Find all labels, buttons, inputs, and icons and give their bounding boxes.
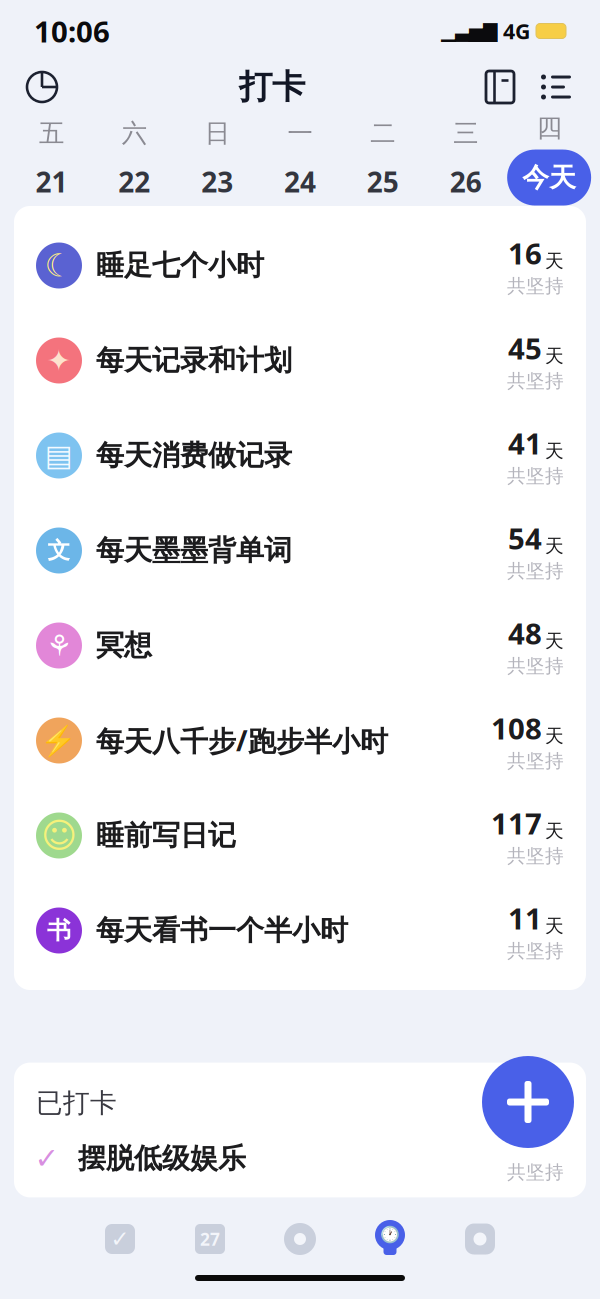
staticText: 27 xyxy=(200,1227,220,1250)
staticText: 108 xyxy=(491,709,542,748)
staticText: 25 xyxy=(367,163,399,200)
button[interactable]: 六 xyxy=(93,112,176,206)
staticText: 六 xyxy=(122,118,147,149)
button[interactable] xyxy=(435,1216,525,1262)
staticText: 10:06 xyxy=(34,11,110,50)
staticText: 一 xyxy=(287,118,312,149)
staticText: 四 xyxy=(537,112,562,143)
button[interactable] xyxy=(474,63,526,111)
button[interactable]: 日 xyxy=(176,112,259,206)
button[interactable]: 一 xyxy=(259,112,341,206)
staticText: 天 xyxy=(545,250,564,272)
staticText: 共坚持 xyxy=(507,749,564,772)
staticText: 天 xyxy=(545,915,564,937)
staticText: 26 xyxy=(450,163,482,200)
staticText: ✓ xyxy=(34,1142,59,1175)
button[interactable]: ▤ xyxy=(14,408,586,503)
staticText: 22 xyxy=(118,163,150,200)
button[interactable]: 27 xyxy=(165,1216,255,1262)
staticText: 16 xyxy=(508,234,542,273)
staticText: 二 xyxy=(370,118,395,149)
staticText: 天 xyxy=(545,535,564,557)
button[interactable]: ✦ xyxy=(14,313,586,408)
staticText: 每天看书一个半小时 xyxy=(96,913,348,948)
staticText: 摆脱低级娱乐 xyxy=(78,1141,246,1176)
staticText: 54 xyxy=(508,519,542,558)
staticText: ▁▃▅▇ xyxy=(441,20,497,42)
staticText: ✦ xyxy=(46,344,71,377)
staticText: 共坚持 xyxy=(507,939,564,962)
button[interactable]: ☺ xyxy=(14,788,586,883)
staticText: 书 xyxy=(47,916,71,945)
staticText: 4G xyxy=(503,17,530,45)
button[interactable]: 三 xyxy=(424,112,507,206)
staticText: 共坚持 xyxy=(507,844,564,867)
button[interactable]: 🕐 xyxy=(345,1216,435,1262)
button[interactable]: 书 xyxy=(14,883,586,978)
staticText: 冥想 xyxy=(96,628,152,663)
staticText: 每天消费做记录 xyxy=(96,438,292,473)
staticText: 日 xyxy=(205,118,230,149)
button[interactable]: ⚡ xyxy=(14,693,586,788)
button[interactable]: 文 xyxy=(14,503,586,598)
staticText: 天 xyxy=(545,630,564,652)
button[interactable]: ✓ xyxy=(14,1119,586,1197)
staticText: 共坚持 xyxy=(507,369,564,392)
staticText: 天 xyxy=(545,820,564,842)
button[interactable] xyxy=(14,63,70,111)
staticText: ⚡ xyxy=(40,724,77,757)
staticText: ▤ xyxy=(45,439,73,472)
staticText: 天 xyxy=(545,725,564,747)
button[interactable]: 四 xyxy=(507,112,590,206)
staticText: 45 xyxy=(508,329,542,368)
staticText: 睡前写日记 xyxy=(96,818,236,853)
staticText: ✓ xyxy=(110,1226,129,1252)
staticText: 每天记录和计划 xyxy=(96,343,292,378)
staticText: 共坚持 xyxy=(507,559,564,582)
staticText: 三 xyxy=(453,118,478,149)
staticText: 共坚持 xyxy=(507,274,564,297)
button[interactable] xyxy=(482,1056,574,1148)
button[interactable]: ☾ xyxy=(14,218,586,313)
button[interactable] xyxy=(526,63,586,111)
staticText: 11 xyxy=(508,899,542,938)
staticText: 共坚持 xyxy=(507,1161,564,1184)
staticText: 今天 xyxy=(522,161,576,194)
button[interactable]: ✓ xyxy=(75,1216,165,1262)
staticText: 🕐 xyxy=(380,1226,400,1244)
staticText: 共坚持 xyxy=(507,654,564,677)
staticText: 打卡 xyxy=(239,66,305,107)
staticText: 41 xyxy=(508,424,542,463)
staticText: 48 xyxy=(508,614,542,653)
staticText: 已打卡 xyxy=(36,1087,117,1119)
staticText: 文 xyxy=(47,537,70,564)
staticText: ☾ xyxy=(44,247,73,284)
button[interactable]: 五 xyxy=(10,112,93,206)
staticText: 117 xyxy=(491,804,542,843)
staticText: 五 xyxy=(39,118,64,149)
staticText: 天 xyxy=(545,345,564,367)
button[interactable]: 二 xyxy=(341,112,424,206)
staticText: ⚘ xyxy=(46,629,72,662)
staticText: 每天八千步/跑步半小时 xyxy=(96,722,388,759)
staticText: 睡足七个小时 xyxy=(96,248,264,283)
button[interactable]: ⚘ xyxy=(14,598,586,693)
staticText: ☺ xyxy=(41,816,77,855)
staticText: 每天墨墨背单词 xyxy=(96,533,292,568)
staticText: 21 xyxy=(35,163,67,200)
staticText: 24 xyxy=(284,163,316,200)
button[interactable] xyxy=(255,1216,345,1262)
staticText: 23 xyxy=(201,163,233,200)
staticText: 天 xyxy=(545,440,564,462)
staticText: 共坚持 xyxy=(507,464,564,487)
